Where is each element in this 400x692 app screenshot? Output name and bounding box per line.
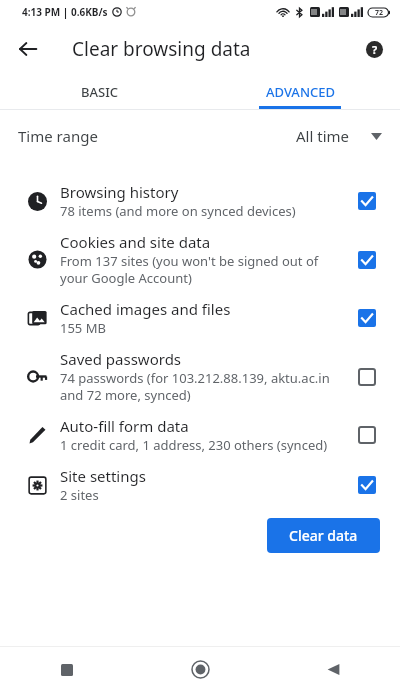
staticText: From 137 sites (you won't be signed out … — [60, 252, 340, 287]
staticText: 72 — [375, 8, 384, 18]
button[interactable]: Checked — [350, 243, 384, 277]
button[interactable]: ADVANCED — [200, 74, 400, 109]
button[interactable]: Clear data — [267, 518, 380, 553]
staticText: 2 sites — [60, 486, 99, 504]
button[interactable]: Back — [267, 647, 400, 692]
staticText: 4:13 PM | 0.6KB/s — [22, 5, 108, 19]
button[interactable]: Site settings — [0, 460, 400, 510]
button[interactable]: Checked — [350, 301, 384, 335]
staticText: Cached images and files — [60, 299, 231, 319]
staticText: Site settings — [60, 466, 146, 486]
staticText: 74 passwords (for 103.212.88.139, aktu.a… — [60, 369, 340, 404]
staticText: Cookies and site data — [60, 232, 211, 252]
staticText: 155 MB — [60, 319, 106, 337]
staticText: BASIC — [81, 83, 119, 101]
button[interactable]: Back — [8, 29, 48, 69]
staticText: All time — [296, 126, 349, 146]
button[interactable]: Checked — [350, 468, 384, 502]
button[interactable]: Unchecked — [350, 418, 384, 452]
button[interactable]: Help — [356, 31, 392, 67]
button[interactable]: Unchecked — [350, 360, 384, 394]
button[interactable]: Cookies and site data — [0, 226, 400, 293]
staticText: Auto-fill form data — [60, 416, 189, 436]
staticText: Time range — [18, 126, 98, 146]
button[interactable]: Time range — [0, 110, 400, 162]
staticText: 78 items (and more on synced devices) — [60, 202, 296, 220]
staticText: Clear data — [289, 526, 358, 545]
staticText: Saved passwords — [60, 349, 182, 369]
staticText: Clear browsing data — [72, 36, 251, 62]
button[interactable]: Auto-fill form data — [0, 410, 400, 460]
staticText: 1 credit card, 1 address, 230 others (sy… — [60, 436, 328, 454]
button[interactable]: Cached images and files — [0, 293, 400, 343]
button[interactable]: Checked — [350, 184, 384, 218]
button[interactable]: Browsing history — [0, 176, 400, 226]
staticText: Browsing history — [60, 182, 179, 202]
button[interactable]: Saved passwords — [0, 343, 400, 410]
button[interactable]: BASIC — [0, 74, 200, 109]
staticText: ADVANCED — [266, 83, 335, 101]
button[interactable]: Home — [134, 647, 267, 692]
staticText: ? — [372, 42, 378, 57]
button[interactable]: Recent apps — [0, 647, 134, 692]
